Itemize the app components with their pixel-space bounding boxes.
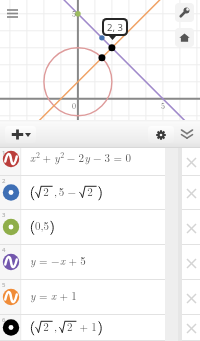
button[interactable]: Delete expression bbox=[0, 148, 200, 176]
button[interactable]: Delete expression bbox=[0, 280, 200, 315]
button[interactable]: Delete expression bbox=[0, 176, 200, 210]
button[interactable]: Delete expression bbox=[0, 245, 200, 280]
button[interactable]: Home bbox=[175, 28, 194, 47]
staticText: 2, 3 bbox=[107, 21, 123, 34]
button[interactable]: Add expression bbox=[5, 126, 36, 143]
button[interactable]: Delete expression bbox=[183, 290, 199, 306]
button[interactable]: Delete expression bbox=[183, 255, 199, 271]
button[interactable]: Delete expression bbox=[183, 185, 199, 201]
button[interactable]: Graph settings bbox=[175, 3, 194, 22]
button[interactable]: Menu bbox=[3, 4, 22, 23]
button[interactable]: Delete expression bbox=[0, 315, 200, 341]
button[interactable]: Delete expression bbox=[183, 320, 199, 336]
button[interactable]: Collapse list bbox=[178, 126, 195, 143]
button[interactable]: Delete expression bbox=[0, 210, 200, 245]
button[interactable]: Settings bbox=[148, 126, 174, 143]
button[interactable]: Delete expression bbox=[183, 220, 199, 236]
button[interactable]: 2, 3 bbox=[104, 20, 126, 34]
button[interactable]: Delete expression bbox=[183, 154, 199, 170]
